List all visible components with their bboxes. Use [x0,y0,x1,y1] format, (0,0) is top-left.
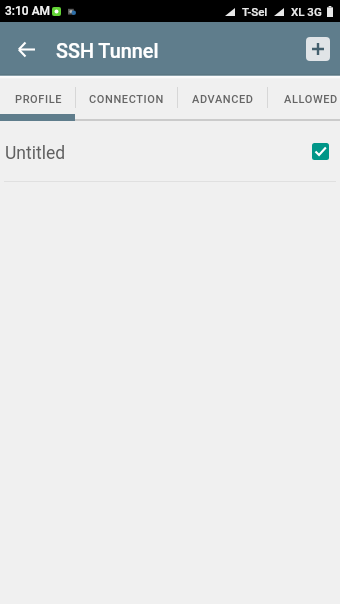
button[interactable] [267,79,340,121]
staticText: XL 3G [291,5,322,18]
button[interactable] [177,79,267,121]
staticText: ALLOWED APPS [284,93,340,106]
button[interactable]: Untitled [0,121,340,181]
staticText: 3:10 AM [5,4,51,18]
button[interactable]: Add [306,37,330,61]
staticText: Untitled [5,143,66,164]
button[interactable] [0,79,75,121]
staticText: ADVANCED [192,93,254,106]
staticText: PROFILE [15,93,63,106]
staticText: T-Sel [242,5,268,18]
button[interactable]: Navigate up [8,31,44,67]
button[interactable] [75,79,178,121]
staticText: CONNECTION [89,93,164,106]
staticText: SSH Tunnel [56,40,159,63]
